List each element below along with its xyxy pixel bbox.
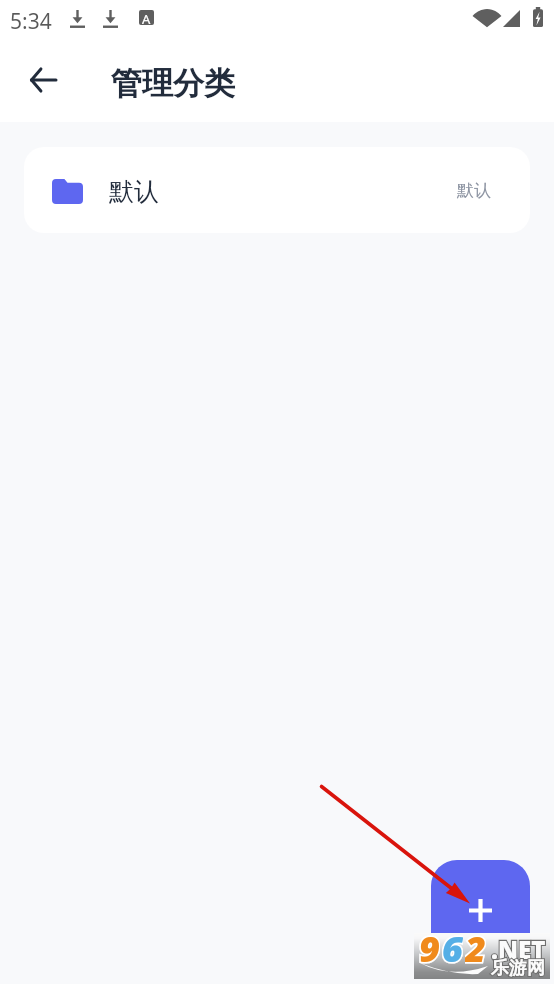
staticText: 5:34	[10, 7, 52, 36]
staticText: .NET	[491, 933, 546, 966]
button[interactable]: Add category	[431, 860, 530, 978]
button[interactable]: Back	[18, 55, 68, 105]
staticText: 乐游网	[491, 957, 545, 980]
staticText: A	[142, 10, 151, 25]
staticText: 默认	[457, 180, 491, 201]
staticText: 2	[465, 924, 486, 970]
staticText: 2	[465, 924, 486, 970]
staticText: 9	[419, 924, 440, 970]
staticText: 默认	[109, 176, 159, 207]
staticText: .NET	[491, 933, 546, 966]
staticText: 9	[419, 924, 440, 970]
staticText: 6	[442, 924, 463, 970]
button[interactable]: 默认	[24, 147, 530, 233]
staticText: 6	[442, 924, 463, 970]
staticText: 乐游网	[491, 957, 545, 980]
staticText: 管理分类	[111, 64, 235, 103]
